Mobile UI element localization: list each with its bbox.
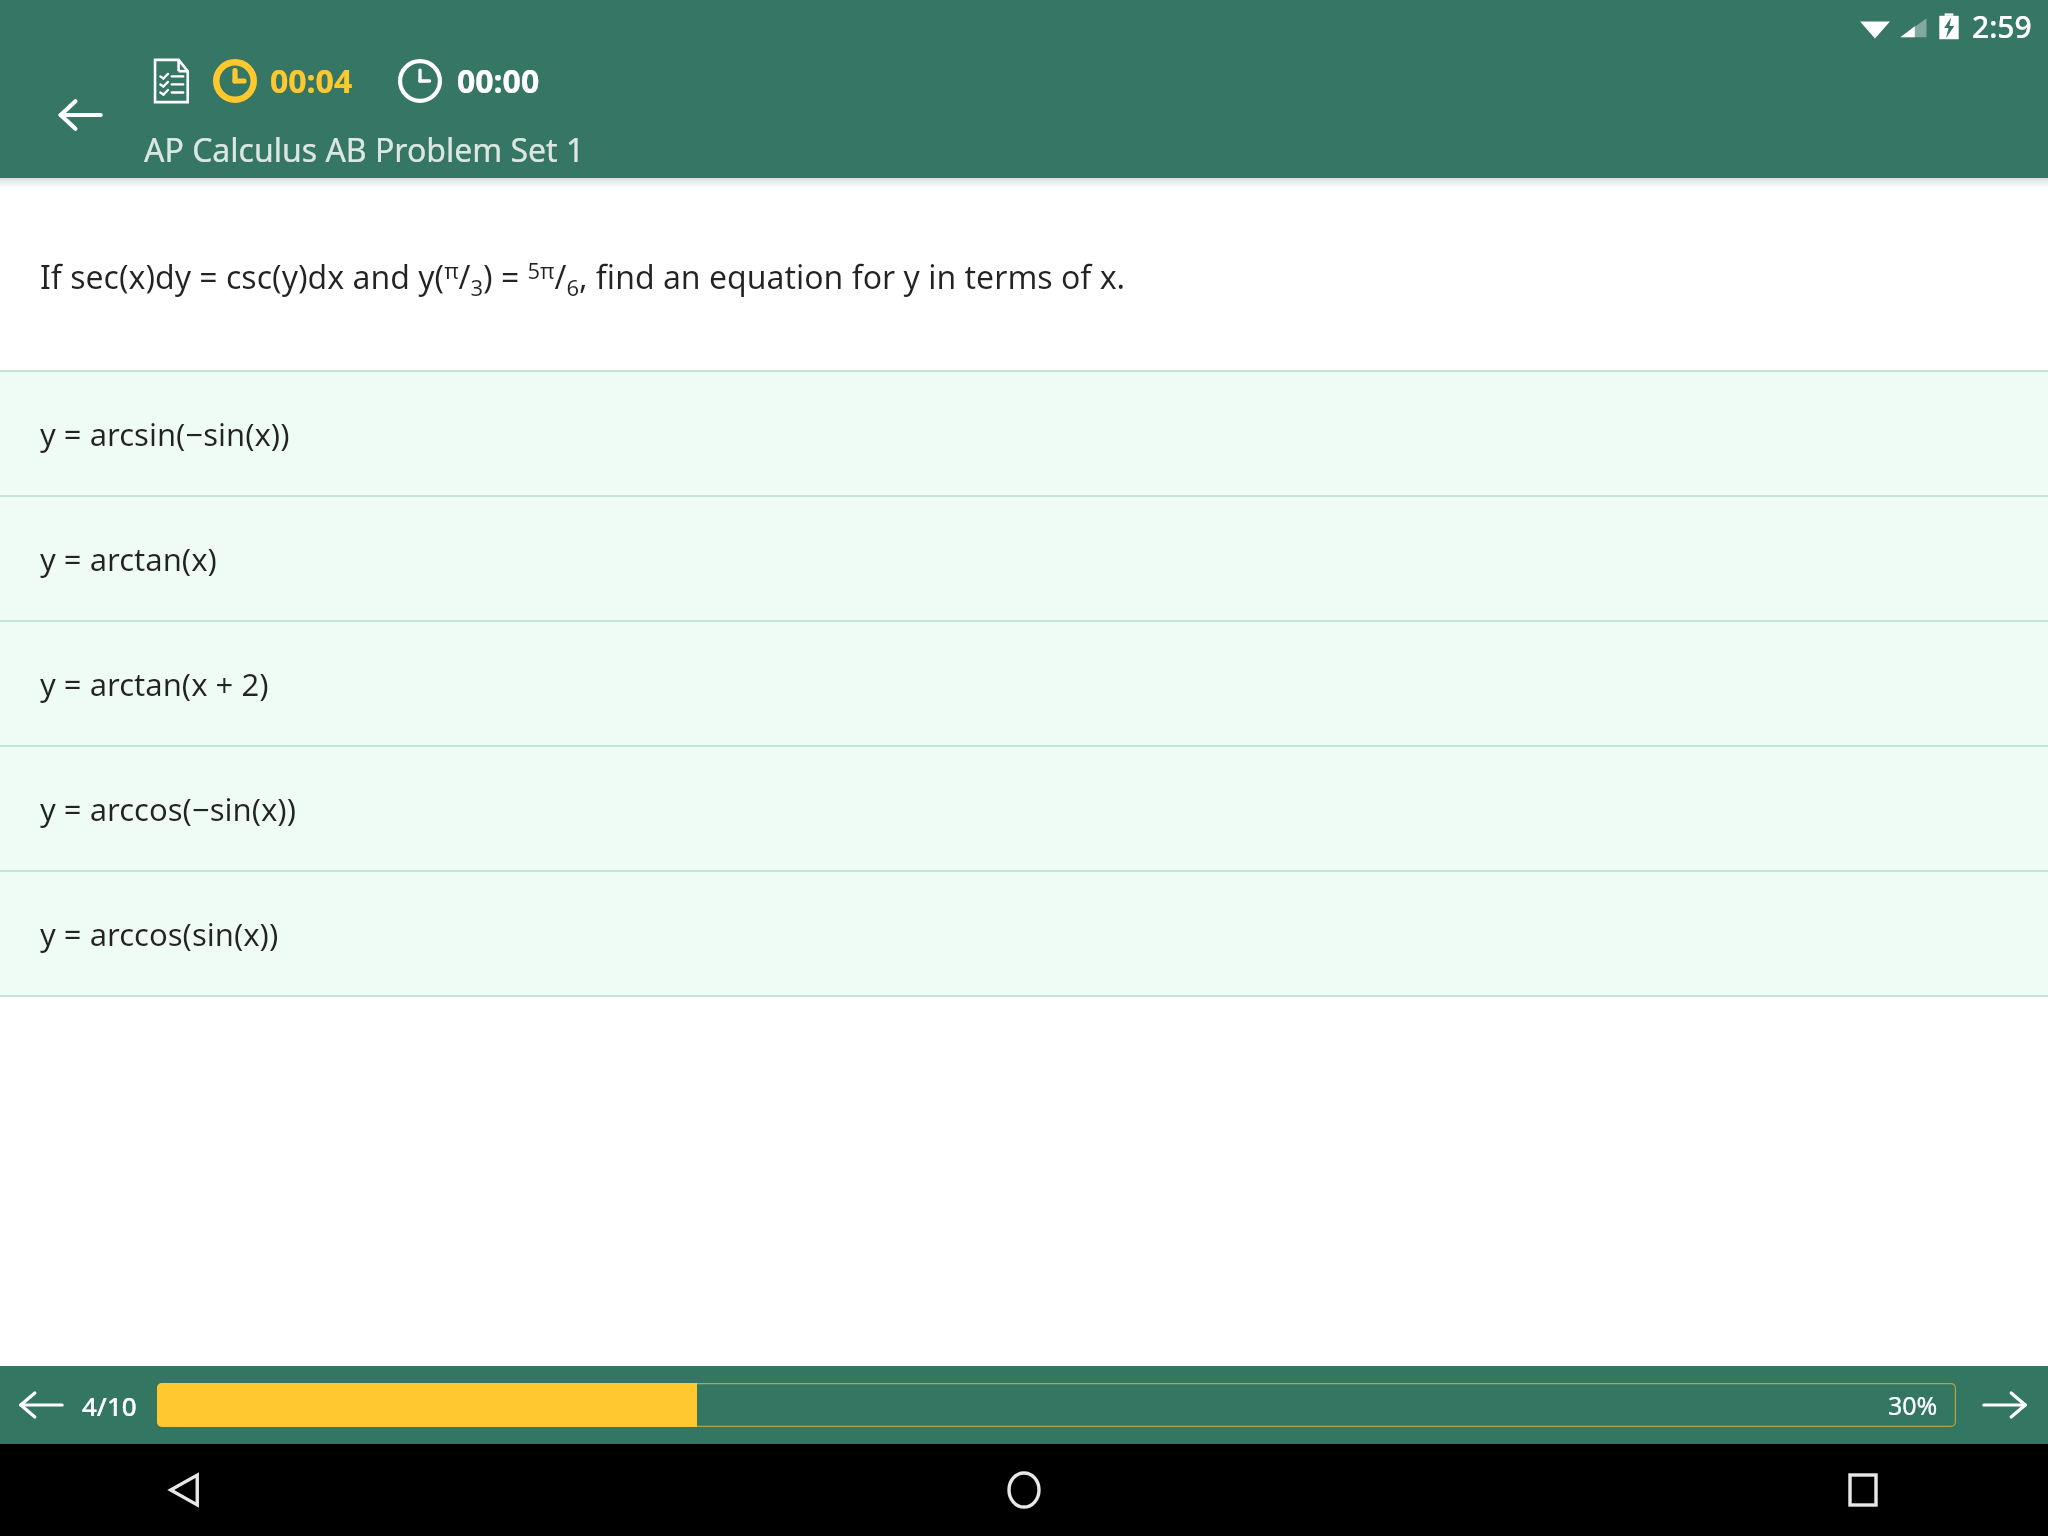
- button[interactable]: Next question: [1974, 1374, 2036, 1436]
- button[interactable]: Back: [150, 1455, 220, 1525]
- button[interactable]: y = arcsin(−sin(x)): [0, 372, 2048, 495]
- staticText: y = arccos(−sin(x)): [40, 788, 296, 830]
- staticText: AP Calculus AB Problem Set 1: [144, 128, 585, 172]
- staticText: y = arccos(sin(x)): [40, 913, 279, 955]
- button[interactable]: 30%: [157, 1383, 1956, 1427]
- button[interactable]: Recent apps: [1828, 1455, 1898, 1525]
- button[interactable]: Previous question: [10, 1374, 72, 1436]
- staticText: y = arctan(x + 2): [40, 663, 269, 705]
- staticText: 30%: [1888, 1388, 1938, 1422]
- staticText: 00:00: [457, 59, 540, 103]
- staticText: 00:04: [270, 59, 353, 103]
- staticText: 4/10: [82, 1388, 137, 1423]
- staticText: If sec(x)dy = csc(y)dx and y(π/3) = 5π/6…: [40, 255, 1126, 303]
- staticText: y = arcsin(−sin(x)): [40, 413, 290, 455]
- button[interactable]: y = arctan(x + 2): [0, 622, 2048, 745]
- button[interactable]: Back: [44, 79, 116, 151]
- staticText: 2:59: [1972, 6, 2032, 47]
- button[interactable]: y = arctan(x): [0, 497, 2048, 620]
- button[interactable]: Home: [989, 1455, 1059, 1525]
- button[interactable]: y = arccos(sin(x)): [0, 872, 2048, 995]
- staticText: y = arctan(x): [40, 538, 217, 580]
- button[interactable]: y = arccos(−sin(x)): [0, 747, 2048, 870]
